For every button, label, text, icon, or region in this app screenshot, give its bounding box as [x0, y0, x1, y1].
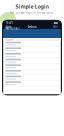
staticText: Simple Login [15, 3, 48, 10]
staticText: 9:41 [6, 21, 13, 25]
staticText: Back [6, 25, 11, 29]
staticText: TODAY [5, 38, 14, 41]
staticText: Edit [53, 25, 58, 29]
staticText: Mailboxes [5, 27, 19, 30]
staticText: Inbox [28, 25, 36, 29]
staticText: Fast, private sign-in for everyone [10, 11, 54, 15]
